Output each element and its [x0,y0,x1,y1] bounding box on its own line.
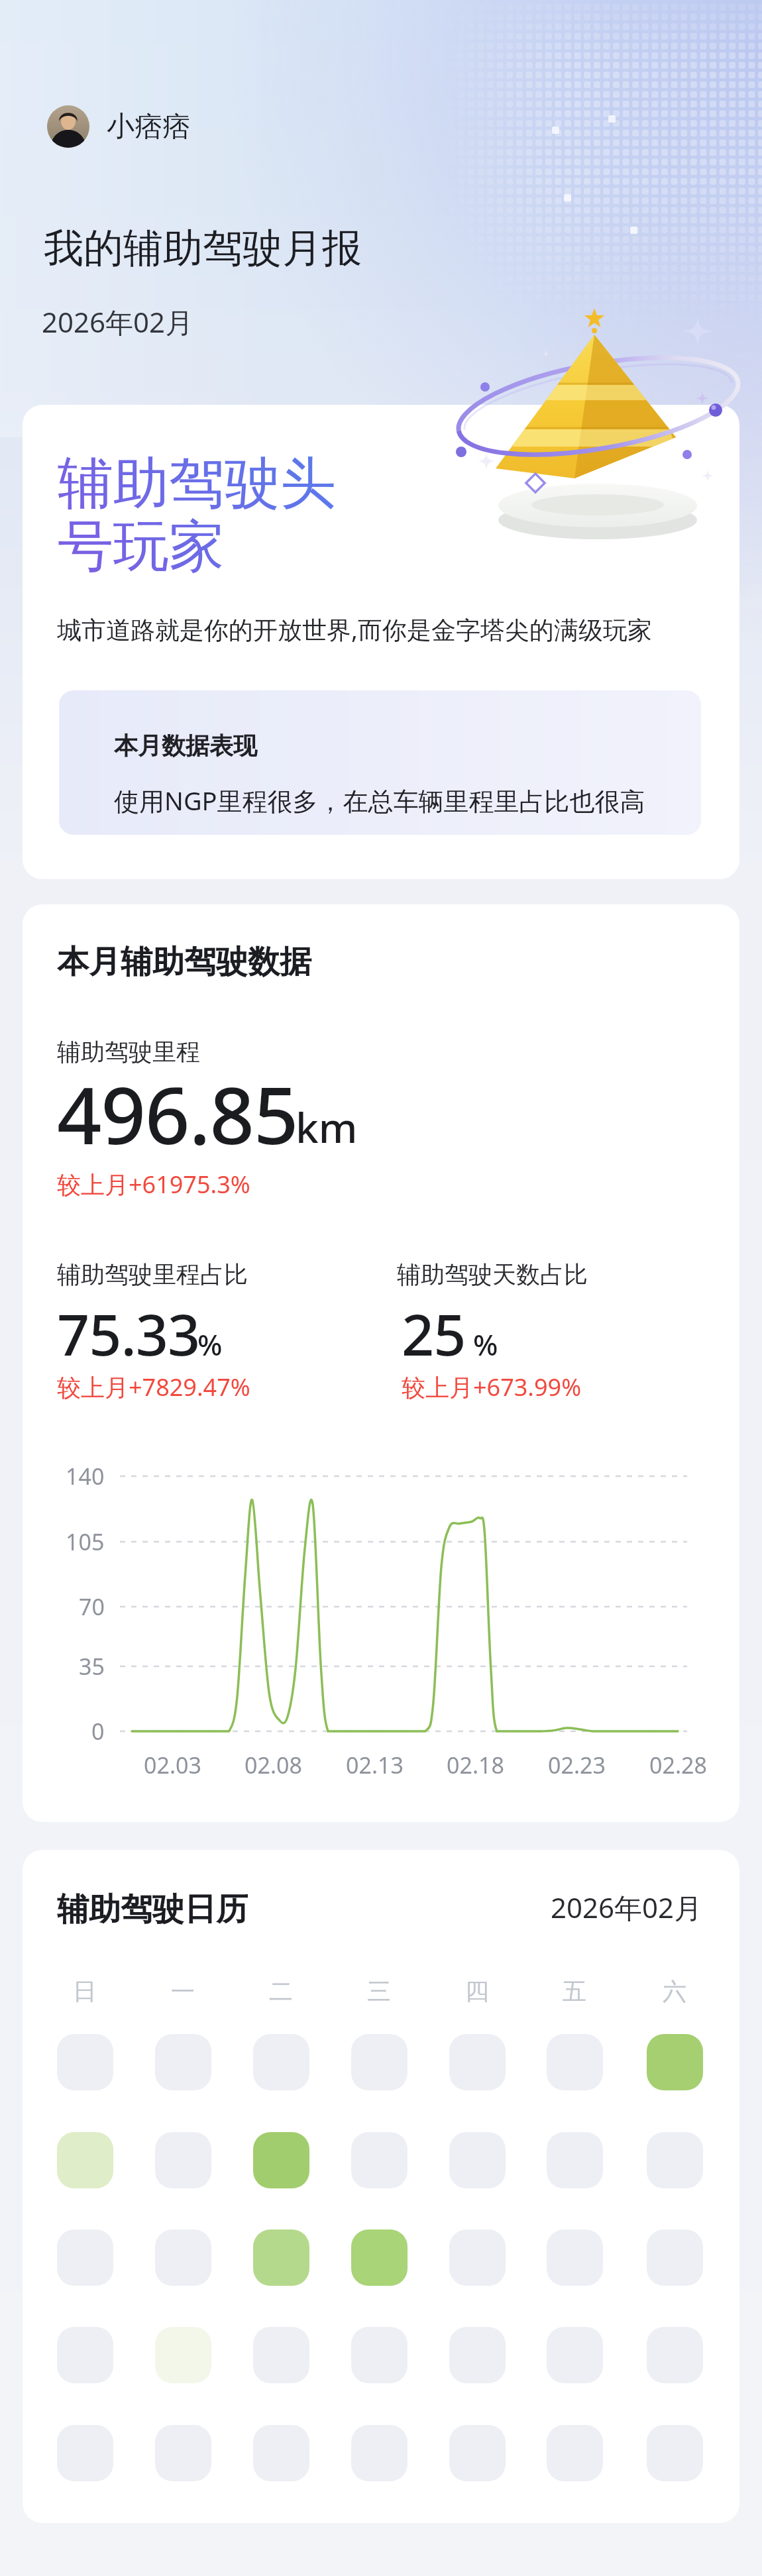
button[interactable]: 辅助驾驶日历 [23,1850,739,2523]
staticText: 辅助驾驶日历 [57,1890,248,1929]
staticText: 日 [73,1976,97,2006]
button[interactable] [547,2327,603,2383]
button[interactable] [253,2132,309,2188]
button[interactable] [253,2327,309,2383]
button[interactable] [253,2425,309,2481]
button[interactable]: 本月辅助驾驶数据 [23,904,739,1822]
staticText: 70 [79,1591,105,1622]
staticText: % [197,1324,223,1364]
staticText: 75.33 [57,1295,200,1372]
button[interactable] [253,2229,309,2286]
button[interactable] [351,2327,408,2383]
staticText: 辅助驾驶里程占比 [57,1260,248,1289]
staticText: 0 [91,1716,105,1746]
button[interactable] [449,2229,506,2286]
staticText: 02.08 [245,1750,302,1780]
button[interactable] [547,2425,603,2481]
button[interactable]: 小痞痞 [47,105,190,148]
button[interactable] [449,2034,506,2090]
button[interactable] [647,2132,703,2188]
staticText: 140 [66,1461,105,1491]
staticText: 2026年02月 [551,1888,702,1926]
button[interactable] [647,2327,703,2383]
button[interactable] [57,2229,113,2286]
staticText: km [296,1099,358,1155]
staticText: 辅助驾驶头 号玩家 [58,449,336,582]
staticText: 小痞痞 [107,109,190,144]
button[interactable] [57,2034,113,2090]
button[interactable] [57,2132,113,2188]
button[interactable] [253,2034,309,2090]
button[interactable] [155,2132,211,2188]
staticText: % [473,1324,498,1364]
staticText: 02.13 [346,1750,404,1780]
button[interactable]: 辅助驾驶头 号玩家 [23,405,739,879]
staticText: 使用NGP里程很多，在总车辆里程里占比也很高 [114,783,645,818]
button[interactable] [351,2425,408,2481]
button[interactable] [351,2229,408,2286]
staticText: 较上月+61975.3% [57,1168,250,1201]
staticText: 城市道路就是你的开放世界,而你是金字塔尖的满级玩家 [57,612,652,646]
staticText: 02.03 [144,1750,201,1780]
button[interactable] [155,2229,211,2286]
staticText: 较上月+673.99% [402,1371,582,1403]
button[interactable] [155,2034,211,2090]
staticText: 35 [79,1651,105,1682]
staticText: 辅助驾驶天数占比 [397,1260,588,1289]
button[interactable] [547,2034,603,2090]
staticText: 我的辅助驾驶月报 [44,223,362,274]
button[interactable] [647,2229,703,2286]
button[interactable] [547,2132,603,2188]
staticText: 本月辅助驾驶数据 [57,942,311,982]
staticText: 三 [367,1976,391,2006]
staticText: 02.23 [548,1750,606,1780]
button[interactable] [57,2327,113,2383]
button[interactable] [449,2425,506,2481]
staticText: 六 [663,1976,686,2006]
button[interactable] [449,2327,506,2383]
button[interactable] [647,2034,703,2090]
button[interactable] [647,2425,703,2481]
staticText: 较上月+7829.47% [57,1371,250,1403]
staticText: 2026年02月 [42,303,193,341]
staticText: 496.85 [57,1061,298,1167]
staticText: 四 [465,1976,489,2006]
staticText: 25 [402,1295,466,1372]
button[interactable] [57,2425,113,2481]
staticText: 本月数据表现 [114,731,257,761]
staticText: 二 [269,1976,293,2006]
button[interactable] [155,2425,211,2481]
staticText: 五 [563,1976,586,2006]
staticText: 105 [66,1527,105,1557]
staticText: 02.28 [649,1750,707,1780]
staticText: 辅助驾驶里程 [57,1037,200,1067]
staticText: 02.18 [447,1750,504,1780]
button[interactable] [547,2229,603,2286]
button[interactable] [155,2327,211,2383]
staticText: 一 [171,1976,195,2006]
button[interactable] [449,2132,506,2188]
button[interactable] [351,2132,408,2188]
button[interactable] [351,2034,408,2090]
